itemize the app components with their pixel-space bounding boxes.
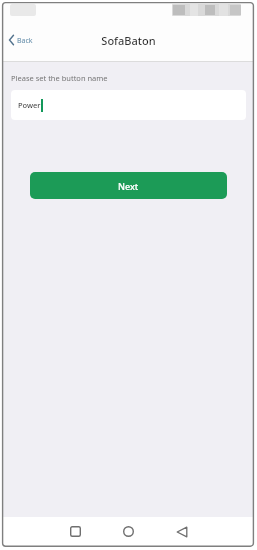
button[interactable] <box>117 520 140 543</box>
button[interactable] <box>64 520 87 543</box>
button[interactable]: Back <box>6 30 40 50</box>
button[interactable]: Power <box>11 90 246 120</box>
staticText: Please set the button name <box>11 73 108 83</box>
staticText: Next <box>118 180 139 192</box>
button[interactable] <box>170 520 193 543</box>
button[interactable]: Next <box>30 172 227 199</box>
staticText: Power <box>18 100 41 110</box>
staticText: SofaBaton <box>0 33 257 48</box>
staticText: Back <box>17 36 33 46</box>
